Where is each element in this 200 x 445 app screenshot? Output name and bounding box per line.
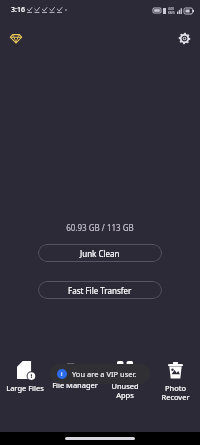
staticText: Unused Apps	[111, 381, 139, 400]
button[interactable]: i	[50, 364, 150, 384]
button[interactable]: Photo Recover	[150, 355, 200, 402]
staticText: 60.93 GB / 113 GB	[0, 222, 200, 233]
staticText: File Manager	[52, 380, 98, 390]
button[interactable]: Unused Apps	[100, 355, 150, 400]
staticText: 4.00 KB/S	[168, 7, 175, 14]
button[interactable]: File Manager	[50, 355, 100, 390]
staticText: 3:16	[11, 5, 25, 15]
button[interactable]: Settings	[173, 27, 195, 49]
staticText: You are a VIP user.	[72, 369, 137, 379]
staticText: Large Files	[6, 383, 44, 393]
staticText: i	[61, 370, 63, 378]
staticText: Fast File Transfer	[68, 285, 132, 296]
button[interactable]: VIP diamond	[5, 27, 27, 49]
button[interactable]: Fast File Transfer	[38, 281, 162, 299]
staticText: Photo Recover	[161, 383, 190, 402]
button[interactable]: Junk Clean	[38, 244, 162, 262]
staticText: Junk Clean	[80, 248, 120, 259]
button[interactable]: Large Files	[0, 355, 50, 393]
